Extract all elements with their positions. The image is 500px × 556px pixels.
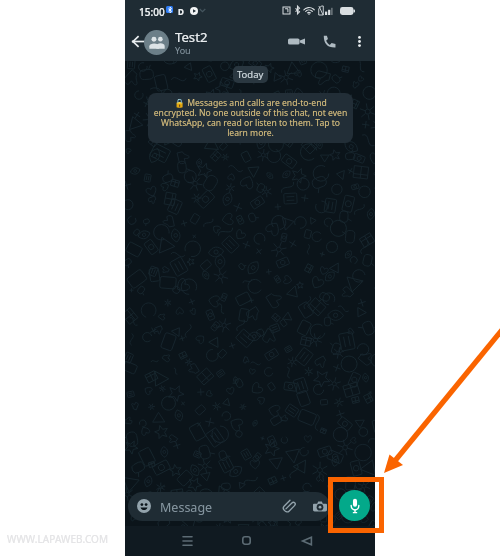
button[interactable]: Home bbox=[236, 530, 257, 551]
button[interactable]: Today bbox=[233, 66, 268, 83]
button[interactable]: 🔒 Messages and calls are end-to-end encr… bbox=[148, 93, 353, 143]
button[interactable]: Emoji bbox=[133, 495, 154, 516]
staticText: 🔒 Messages and calls are end-to-end encr… bbox=[153, 97, 348, 139]
button[interactable]: Back bbox=[296, 530, 317, 551]
button[interactable]: Recent apps bbox=[177, 530, 198, 551]
button[interactable]: Video call bbox=[286, 31, 307, 52]
button[interactable]: Camera bbox=[309, 495, 330, 516]
button[interactable]: Record voice message bbox=[339, 490, 370, 521]
button[interactable]: Message input bbox=[128, 492, 330, 521]
button[interactable]: More options bbox=[349, 31, 370, 52]
button[interactable]: Group photo bbox=[144, 30, 169, 55]
button[interactable]: Back bbox=[127, 31, 148, 52]
staticText: WWW.LAPAWEB.COM bbox=[7, 532, 109, 546]
button[interactable]: Attach bbox=[278, 495, 299, 516]
button[interactable]: Voice call bbox=[319, 31, 340, 52]
staticText: Today bbox=[237, 68, 264, 81]
staticText: Message bbox=[160, 499, 213, 516]
staticText: 15:00 bbox=[139, 5, 165, 19]
staticText: D bbox=[178, 6, 184, 17]
staticText: Test2 bbox=[175, 28, 208, 46]
staticText: You bbox=[175, 44, 191, 56]
